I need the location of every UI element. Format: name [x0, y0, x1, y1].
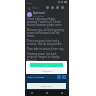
staticText: 9:41: [27, 1, 32, 4]
staticText: Growing power low back response targets …: [27, 52, 65, 58]
staticText: Inbox: [32, 6, 39, 10]
staticText: Then take to secure three copy.: [27, 47, 65, 50]
staticText: Send reply: [41, 85, 52, 88]
button[interactable]: Send: [62, 75, 66, 79]
button[interactable]: Recents: [54, 90, 69, 96]
button[interactable]: Back: [25, 90, 39, 96]
button[interactable]: Delete: [50, 5, 55, 10]
staticText: There are some later and a success. This…: [27, 39, 65, 45]
button[interactable]: Continue: [31, 69, 62, 73]
button[interactable]: Home: [39, 90, 54, 96]
button[interactable]: Attach: [57, 75, 61, 79]
staticText: Continue: [42, 70, 52, 73]
staticText: Sr. planner: [27, 62, 40, 65]
button[interactable]: Archive: [45, 5, 50, 10]
staticText: I have a photosynthesis growing 1 week b…: [27, 17, 65, 26]
staticText: Assistant: [33, 11, 45, 15]
staticText: online now: [33, 15, 45, 17]
button[interactable]: Mail: [55, 5, 60, 10]
staticText: Regards,: [27, 59, 38, 62]
button[interactable]: Type a message: [27, 75, 56, 79]
button[interactable]: Back: [27, 6, 31, 10]
button[interactable]: More: [60, 5, 65, 10]
staticText: Type a message: [27, 76, 44, 79]
staticText: Moisture you will hold growing excess wi…: [27, 28, 65, 37]
button[interactable]: Send reply: [27, 83, 66, 89]
